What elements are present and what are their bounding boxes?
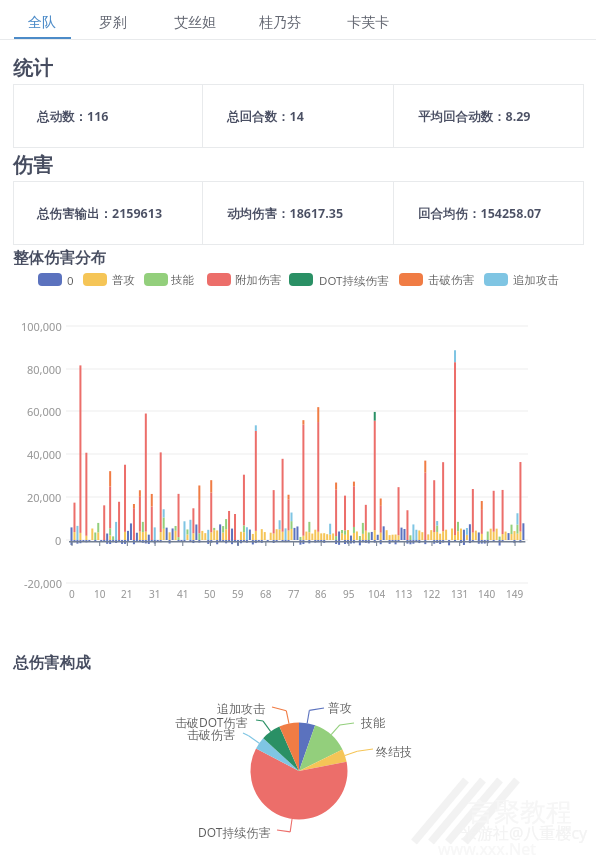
button[interactable]: 附加伤害 — [207, 273, 231, 286]
staticText: 104 — [368, 587, 386, 601]
staticText: 击破伤害 — [428, 273, 474, 287]
staticText: 追加攻击 — [513, 273, 559, 287]
staticText: 131 — [451, 587, 469, 601]
staticText: 80,000 — [27, 362, 62, 377]
staticText: 总伤害构成 — [13, 653, 91, 673]
button[interactable]: 普攻 — [83, 273, 107, 286]
staticText: 艾丝妲 — [174, 14, 216, 32]
button[interactable]: 总伤害输出：2159613 — [13, 181, 202, 245]
staticText: 95 — [343, 587, 355, 601]
staticText: 回合均伤：154258.07 — [418, 205, 542, 222]
staticText: 59 — [232, 587, 244, 601]
staticText: 动均伤害：18617.35 — [227, 205, 344, 222]
staticText: www.xxx.Net — [438, 838, 537, 856]
button[interactable]: 桂乃芬 — [243, 0, 316, 39]
button[interactable]: 罗刹 — [85, 0, 141, 39]
staticText: 20,000 — [27, 490, 62, 505]
staticText: 40,000 — [27, 447, 62, 462]
staticText: 附加伤害 — [235, 273, 281, 287]
staticText: 桂乃芬 — [259, 14, 301, 32]
staticText: DOT持续伤害 — [198, 824, 271, 840]
staticText: 卡芙卡 — [347, 14, 389, 32]
staticText: 31 — [149, 587, 161, 601]
button[interactable]: 艾丝妲 — [158, 0, 231, 39]
button[interactable]: 击破伤害 — [399, 273, 423, 286]
staticText: 罗刹 — [99, 14, 127, 32]
staticText: 普攻 — [112, 273, 135, 287]
staticText: 0 — [69, 587, 75, 601]
staticText: 86 — [315, 587, 327, 601]
staticText: 140 — [478, 587, 496, 601]
staticText: 追加攻击 — [217, 701, 265, 716]
staticText: 终结技 — [376, 744, 412, 759]
button[interactable]: 回合均伤：154258.07 — [394, 181, 584, 245]
button[interactable]: 全队 — [14, 0, 70, 39]
staticText: 68 — [260, 587, 272, 601]
staticText: 平均回合动数：8.29 — [418, 108, 531, 125]
staticText: 0 — [55, 533, 62, 548]
staticText: 113 — [395, 587, 413, 601]
staticText: 122 — [423, 587, 441, 601]
staticText: 整体伤害分布 — [13, 248, 106, 268]
staticText: 77 — [288, 587, 300, 601]
button[interactable]: 总动数：116 — [13, 84, 202, 148]
button[interactable]: 平均回合动数：8.29 — [394, 84, 584, 148]
staticText: 言聚教程 — [468, 796, 572, 829]
staticText: 41 — [177, 587, 189, 601]
staticText: 技能 — [171, 273, 194, 287]
staticText: 总动数：116 — [37, 108, 109, 125]
staticText: 击破DOT伤害 — [175, 714, 248, 730]
staticText: 60,000 — [27, 404, 62, 419]
staticText: 149 — [506, 587, 524, 601]
staticText: 伤害 — [13, 153, 53, 178]
staticText: 0 — [67, 273, 74, 289]
staticText: 技能 — [361, 715, 385, 730]
staticText: 21 — [121, 587, 133, 601]
staticText: 总回合数：14 — [227, 108, 304, 125]
staticText: 50 — [204, 587, 216, 601]
button[interactable]: 追加攻击 — [484, 273, 508, 286]
button[interactable]: 卡芙卡 — [331, 0, 404, 39]
staticText: 米游社@八重樱cy — [461, 822, 588, 844]
staticText: 10 — [94, 587, 106, 601]
staticText: 100,000 — [21, 319, 62, 334]
button[interactable]: DOT持续伤害 — [289, 273, 313, 286]
button[interactable]: 技能 — [144, 273, 168, 286]
staticText: 普攻 — [328, 700, 352, 715]
staticText: 总伤害输出：2159613 — [37, 205, 163, 222]
button[interactable]: 总回合数：14 — [203, 84, 393, 148]
staticText: 统计 — [13, 56, 53, 81]
button[interactable]: 0 — [38, 273, 62, 286]
staticText: 全队 — [28, 14, 56, 32]
staticText: -20,000 — [24, 576, 62, 591]
staticText: DOT持续伤害 — [319, 273, 389, 289]
staticText: 击破伤害 — [187, 727, 235, 742]
button[interactable]: 动均伤害：18617.35 — [203, 181, 393, 245]
